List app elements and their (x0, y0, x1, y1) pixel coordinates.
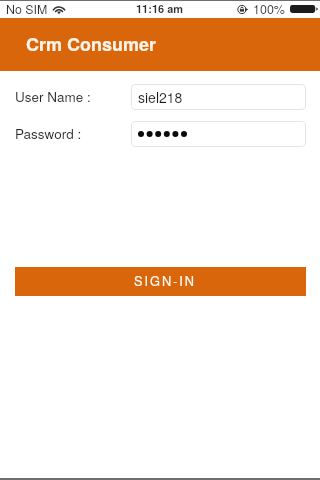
staticText: 11:16 am (136, 1, 184, 17)
staticText: Crm Consumer (26, 31, 157, 57)
button[interactable]: Password : (131, 121, 306, 147)
button[interactable]: User Name : (131, 84, 306, 110)
staticText: Password : (15, 124, 82, 143)
staticText: User Name : (15, 87, 91, 106)
staticText: No SIM (6, 0, 48, 18)
staticText: SIGN-IN (134, 271, 196, 289)
button[interactable]: SIGN-IN (15, 267, 306, 296)
staticText: 100% (253, 0, 285, 18)
staticText: siel218 (138, 87, 183, 107)
